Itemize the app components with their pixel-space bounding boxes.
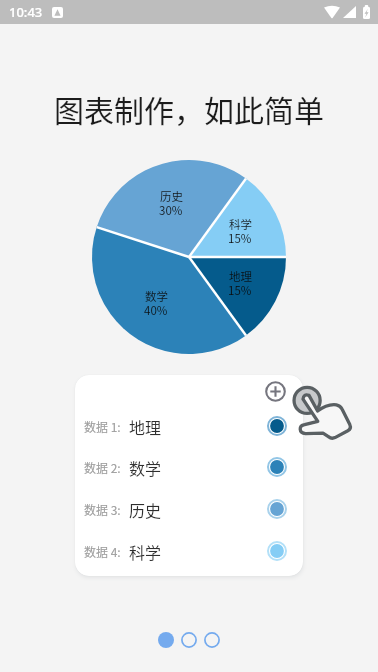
button[interactable]: Page indicator — [178, 629, 200, 650]
staticText: 数据 1: — [84, 418, 121, 435]
button[interactable]: 数据 2: — [75, 446, 303, 488]
staticText: 科学 — [129, 540, 162, 563]
staticText: 图表制作，如此简单 — [0, 87, 378, 130]
button[interactable]: 数据 1: — [75, 405, 303, 447]
button[interactable]: Page indicator — [155, 629, 177, 650]
staticText: 历史 — [160, 188, 183, 205]
staticText: 40% — [144, 302, 168, 319]
staticText: 15% — [228, 230, 252, 247]
staticText: 15% — [228, 282, 252, 299]
button[interactable]: 数据 4: — [75, 530, 303, 572]
staticText: 数据 2: — [84, 459, 121, 476]
staticText: 数据 4: — [84, 543, 121, 560]
staticText: 30% — [159, 202, 183, 219]
staticText: 历史 — [129, 498, 162, 521]
button[interactable]: 数据 3: — [75, 488, 303, 530]
button[interactable]: Page indicator — [201, 629, 223, 650]
staticText: 数学 — [145, 288, 168, 305]
staticText: 地理 — [229, 268, 252, 285]
staticText: 数学 — [129, 456, 162, 479]
staticText: 地理 — [129, 415, 162, 438]
staticText: 10:43 — [9, 3, 43, 21]
button[interactable]: Tap hint — [292, 384, 354, 446]
staticText: 科学 — [229, 216, 252, 233]
button[interactable]: Add data — [263, 379, 287, 403]
staticText: 数据 3: — [84, 501, 121, 518]
